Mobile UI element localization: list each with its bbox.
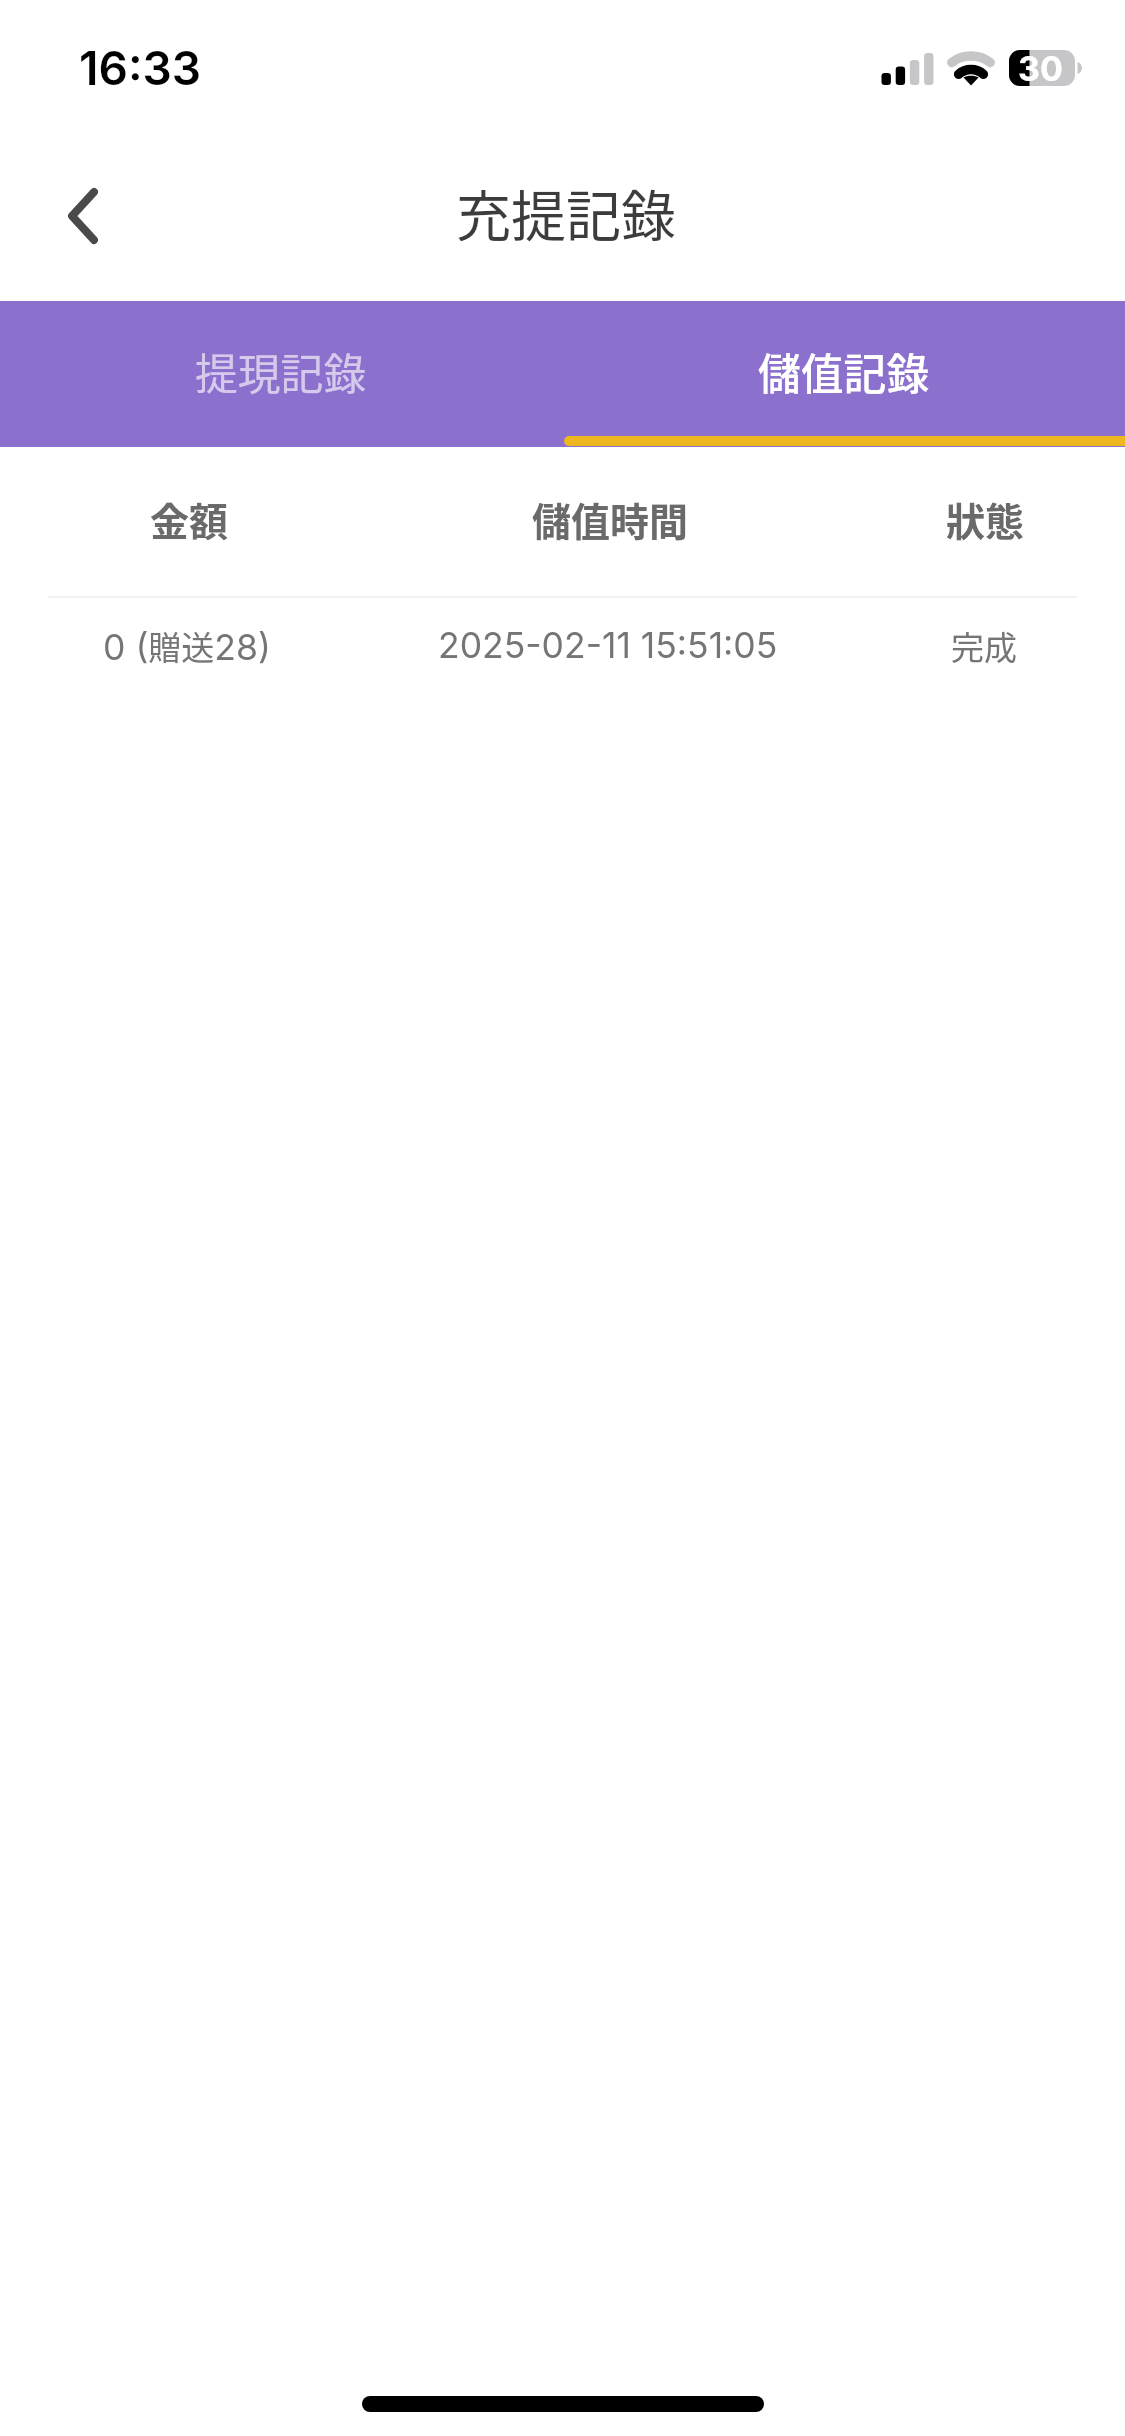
staticText: 0 (贈送28): [103, 622, 271, 670]
button[interactable]: 儲值記錄: [562, 301, 1125, 447]
staticText: 充提記錄: [456, 172, 677, 252]
staticText: 儲值記錄: [758, 340, 930, 402]
staticText: 儲值時間: [532, 491, 689, 547]
staticText: 16:33: [79, 40, 202, 96]
staticText: 金額: [150, 491, 229, 547]
staticText: 狀態: [946, 491, 1025, 547]
staticText: 提現記錄: [195, 340, 367, 402]
staticText: 2025-02-11 15:51:05: [438, 624, 778, 667]
staticText: 完成: [951, 622, 1017, 670]
button[interactable]: 提現記錄: [0, 301, 562, 447]
staticText: 30: [1018, 48, 1063, 89]
button[interactable]: Back: [22, 167, 142, 287]
button[interactable]: 0 (贈送28): [0, 598, 1125, 697]
